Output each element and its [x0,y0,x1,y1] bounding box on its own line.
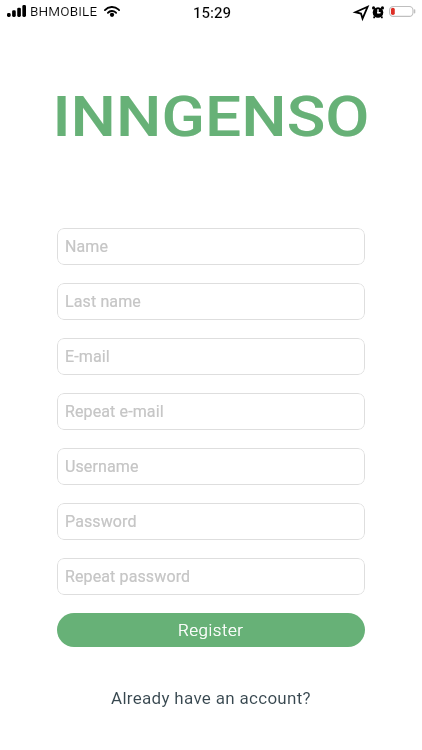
button[interactable]: Username [57,448,365,485]
staticText: INNGENSO [0,85,422,149]
staticText: Register [178,620,244,640]
staticText: Username [65,457,139,476]
button[interactable]: Name [57,228,365,265]
button[interactable]: Password [57,503,365,540]
button[interactable]: E-mail [57,338,365,375]
button[interactable]: Register [57,613,365,647]
staticText: Repeat password [65,567,191,586]
staticText: E-mail [65,347,110,366]
staticText: Last name [65,292,141,311]
staticText: Name [65,237,109,256]
button[interactable]: Repeat e-mail [57,393,365,430]
other: Location [355,6,368,19]
staticText: 15:29 [193,4,232,22]
button[interactable]: Repeat password [57,558,365,595]
staticText: Password [65,512,137,531]
other: Alarm [372,5,384,19]
button[interactable]: Last name [57,283,365,320]
other: Battery [389,5,418,18]
staticText: Repeat e-mail [65,402,164,421]
button[interactable]: Already have an account? [107,686,315,710]
staticText: BHMOBILE [30,3,98,19]
